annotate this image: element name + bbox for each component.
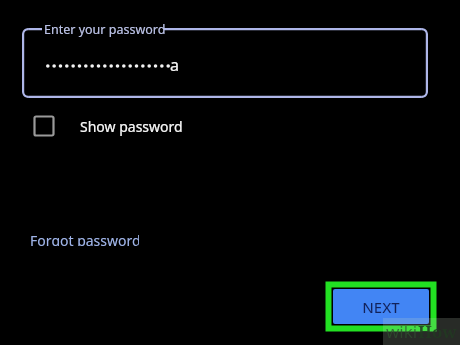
staticText: wiki: [386, 320, 418, 343]
staticText: How: [418, 320, 457, 343]
staticText: a: [170, 54, 179, 76]
staticText: Enter your password: [44, 21, 166, 38]
staticText: Show password: [80, 117, 183, 136]
button[interactable]: NEXT: [333, 289, 429, 324]
button[interactable]: a: [22, 28, 428, 98]
button[interactable]: Forgot password?: [22, 227, 139, 246]
button[interactable]: Show password: [28, 110, 163, 142]
staticText: Forgot password?: [30, 231, 139, 246]
staticText: NEXT: [362, 297, 400, 317]
